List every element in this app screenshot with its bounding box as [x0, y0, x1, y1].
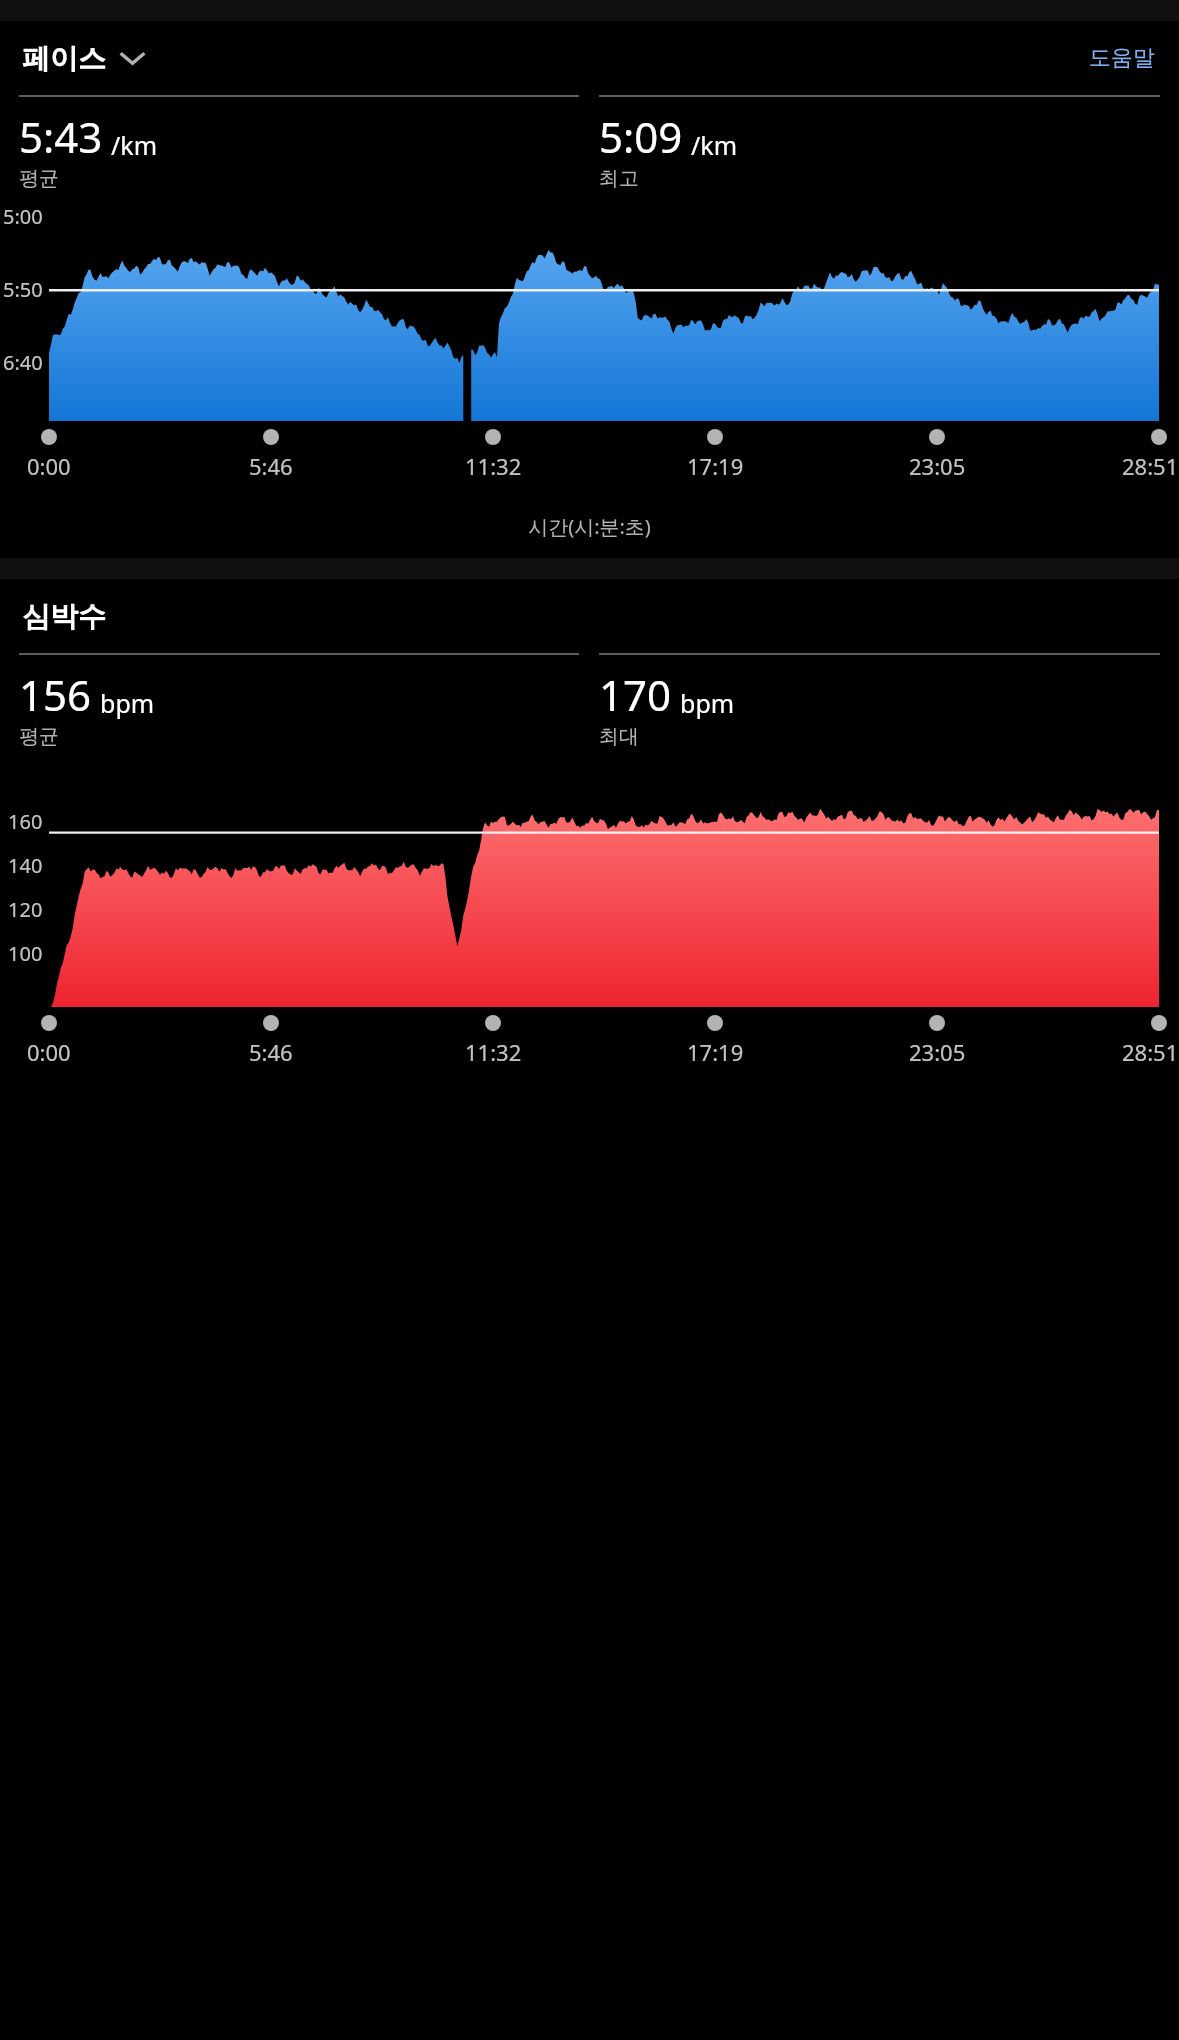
- staticText: 11:32: [465, 1037, 522, 1067]
- staticText: 6:40: [3, 349, 43, 376]
- staticText: 100: [8, 940, 43, 967]
- staticText: /km: [691, 128, 738, 162]
- button[interactable]: 심박수: [18, 591, 110, 642]
- staticText: 시간(시:분:초): [0, 513, 1179, 540]
- staticText: 5:46: [249, 1037, 293, 1067]
- staticText: 120: [8, 896, 43, 923]
- button[interactable]: 도움말: [1081, 36, 1163, 80]
- staticText: 23:05: [909, 1037, 966, 1067]
- staticText: 도움말: [1089, 44, 1155, 72]
- other: Change metric: [121, 51, 144, 66]
- staticText: 0:00: [27, 1037, 71, 1067]
- staticText: 평균: [19, 166, 59, 191]
- staticText: 11:32: [465, 451, 522, 481]
- staticText: bpm: [680, 686, 735, 720]
- staticText: 5:00: [3, 203, 43, 230]
- staticText: 심박수: [22, 599, 106, 634]
- staticText: 140: [8, 852, 43, 879]
- staticText: 5:43: [19, 108, 103, 165]
- staticText: 최대: [599, 724, 639, 749]
- staticText: 23:05: [909, 451, 966, 481]
- staticText: 5:46: [249, 451, 293, 481]
- staticText: 28:51: [1122, 1037, 1179, 1067]
- staticText: 156: [19, 666, 92, 723]
- staticText: 평균: [19, 724, 59, 749]
- staticText: 17:19: [687, 451, 744, 481]
- staticText: 5:09: [599, 108, 683, 165]
- staticText: 페이스: [22, 41, 106, 76]
- staticText: 160: [8, 808, 43, 835]
- staticText: 0:00: [27, 451, 71, 481]
- staticText: bpm: [100, 686, 155, 720]
- staticText: /km: [111, 128, 158, 162]
- staticText: 17:19: [687, 1037, 744, 1067]
- staticText: 170: [599, 666, 672, 723]
- button[interactable]: 페이스: [18, 33, 148, 84]
- staticText: 28:51: [1122, 451, 1179, 481]
- staticText: 최고: [599, 166, 639, 191]
- staticText: 5:50: [3, 276, 43, 303]
